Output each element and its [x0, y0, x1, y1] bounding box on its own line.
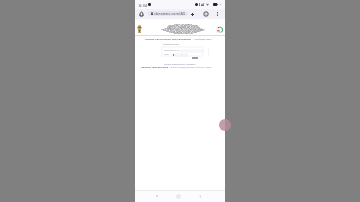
- button[interactable]: Recents: [152, 191, 162, 201]
- staticText: Registration No: [164, 49, 180, 52]
- staticText: ONLINE APPLICATION PORTAL: [166, 30, 201, 33]
- staticText: MINISTRY OF EDUCATION: [168, 24, 198, 27]
- staticText: COMMON ENTRANCE EXAM 2024: [164, 27, 202, 30]
- staticText: INTO ALL PARTICIPATING COLLEGES: [163, 29, 204, 32]
- button[interactable]: Home: [173, 191, 183, 201]
- staticText: FOR ADMISSION TO UG PROGRAMMES: [161, 28, 205, 31]
- button[interactable]: Forgot Registration Number?: [164, 63, 196, 66]
- button[interactable]: More options: [213, 9, 221, 19]
- staticText: ONLINE APPLICATION FOR ADMISSION - candi…: [145, 37, 212, 40]
- staticText: CANDIDATE LOGIN PAGE: [169, 31, 197, 34]
- staticText: Helpline 1800-000-0000 | e-mail help@cbe…: [141, 65, 212, 68]
- staticText: GOVT. OF INDIA: [174, 23, 192, 26]
- staticText: cbexams.com/AS: [154, 11, 186, 16]
- staticText: Date: [164, 53, 169, 56]
- staticText: SESSION 2024-25: [174, 32, 193, 35]
- button[interactable]: Home: [137, 9, 145, 19]
- staticText: CENTRAL BOARD OF EXAMS: [167, 25, 199, 28]
- button[interactable]: Drag handle: [221, 119, 225, 131]
- button[interactable]: cbexams.com/AS: [148, 11, 188, 16]
- staticText: 6:34: [139, 3, 147, 8]
- button[interactable]: New tab: [189, 9, 196, 19]
- staticText: Candidate Login: [163, 43, 180, 46]
- button[interactable]: Switch tabs: [201, 9, 210, 19]
- staticText: DEPT OF HIGHER EDUCATION: [167, 26, 200, 29]
- button[interactable]: Back: [195, 191, 205, 201]
- staticText: Forgot Registration Number?: [164, 63, 196, 66]
